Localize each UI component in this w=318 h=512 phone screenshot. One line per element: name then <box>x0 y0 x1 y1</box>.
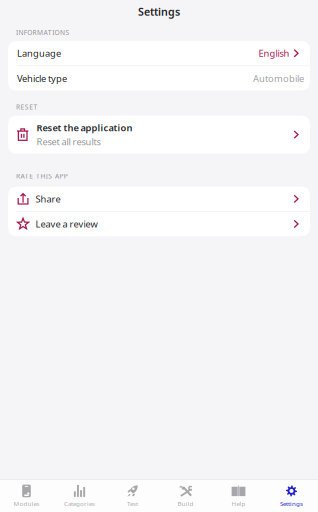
staticText: RESET <box>16 103 38 111</box>
staticText: Share <box>36 193 61 205</box>
staticText: Settings <box>280 499 303 507</box>
staticText: Reset all results <box>36 135 100 148</box>
staticText: Modules <box>13 499 39 507</box>
staticText: Build <box>177 499 193 507</box>
staticText: Reset the application <box>36 121 132 134</box>
button[interactable]: Modules <box>0 480 53 512</box>
button[interactable]: Leave a review <box>8 212 310 236</box>
button[interactable]: Settings <box>265 480 318 512</box>
staticText: English <box>258 47 289 59</box>
staticText: Vehicle type <box>17 72 67 85</box>
staticText: Categories <box>64 499 95 507</box>
button[interactable]: Share <box>8 187 310 211</box>
button[interactable]: Vehicle type <box>8 66 310 91</box>
staticText: Leave a review <box>36 218 98 230</box>
staticText: Help <box>231 499 245 507</box>
button[interactable]: Test <box>106 480 159 512</box>
staticText: Test <box>127 499 138 507</box>
button[interactable]: Categories <box>53 480 106 512</box>
staticText: Settings <box>138 4 180 19</box>
button[interactable]: Build <box>159 480 212 512</box>
staticText: Automobile <box>253 72 304 85</box>
staticText: Language <box>17 47 61 59</box>
staticText: INFORMATIONS <box>16 28 69 37</box>
button[interactable]: Reset the application <box>8 116 310 154</box>
staticText: RATE THIS APP <box>16 172 68 180</box>
button[interactable]: Help <box>212 480 265 512</box>
button[interactable]: Language <box>8 41 310 65</box>
